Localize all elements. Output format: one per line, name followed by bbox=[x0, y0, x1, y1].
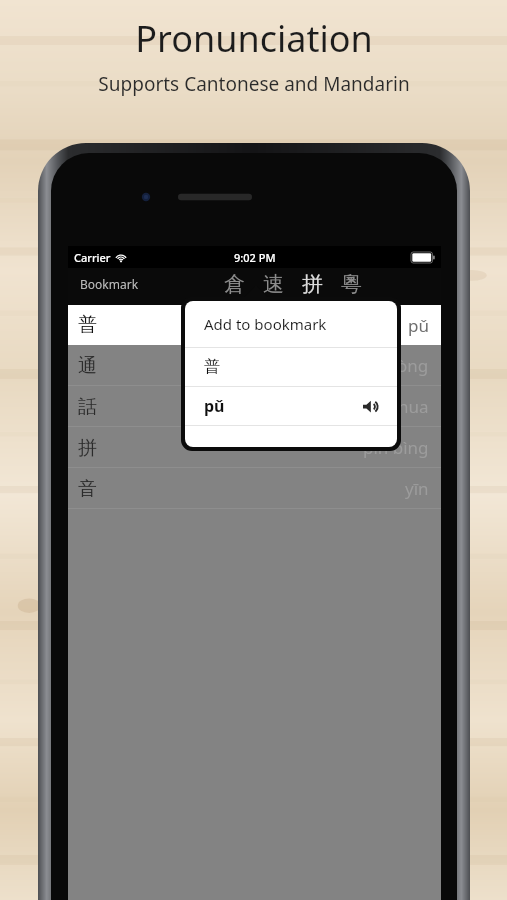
staticText: Add to bookmark bbox=[204, 314, 327, 334]
button[interactable]: 拼 bbox=[68, 427, 441, 468]
button[interactable]: 普 bbox=[68, 305, 441, 345]
staticText: pīn bìng bbox=[363, 436, 429, 459]
staticText: 話 bbox=[78, 395, 97, 419]
staticText: 普 bbox=[204, 357, 220, 377]
button[interactable]: 話 bbox=[68, 426, 441, 467]
staticText: Supports Cantonese and Mandarin bbox=[98, 71, 410, 97]
button[interactable]: Bookmark bbox=[76, 272, 143, 296]
button[interactable]: Clear search bbox=[412, 315, 427, 330]
staticText: 粵 bbox=[341, 271, 362, 297]
staticText: 拼 bbox=[302, 271, 323, 297]
button[interactable]: 話 bbox=[68, 386, 441, 427]
button[interactable]: 粵 bbox=[332, 269, 371, 299]
button[interactable]: 速 bbox=[254, 269, 293, 299]
button[interactable]: 普 bbox=[68, 345, 441, 385]
staticText: 倉 bbox=[224, 271, 245, 297]
staticText: 拼 bbox=[78, 436, 97, 460]
button[interactable]: 普 bbox=[185, 348, 397, 386]
button[interactable]: 普通話拼音 bbox=[75, 306, 434, 339]
staticText: Carrier bbox=[74, 250, 111, 265]
staticText: pǔ bbox=[408, 354, 429, 377]
staticText: 普 bbox=[78, 353, 97, 377]
button[interactable]: 拼 bbox=[293, 269, 332, 299]
staticText: 通 bbox=[78, 354, 97, 378]
staticText: huà hua bbox=[363, 435, 429, 458]
staticText: huà hua bbox=[363, 395, 429, 418]
staticText: pǔ bbox=[204, 395, 225, 417]
button[interactable]: 通 bbox=[68, 385, 441, 426]
staticText: 音 bbox=[78, 477, 97, 501]
staticText: 9:02 PM bbox=[234, 250, 276, 265]
button[interactable]: 通 bbox=[68, 345, 441, 386]
staticText: 話 bbox=[78, 435, 97, 459]
staticText: pīn bìng bbox=[363, 476, 429, 499]
staticText: tōng tòng bbox=[349, 354, 429, 377]
button[interactable]: 倉 bbox=[215, 269, 254, 299]
staticText: yīn bbox=[405, 477, 429, 500]
button[interactable]: 音 bbox=[68, 468, 441, 509]
button[interactable]: 拼 bbox=[68, 467, 441, 508]
button[interactable]: Play pronunciation bbox=[362, 398, 379, 415]
staticText: 普 bbox=[78, 313, 97, 337]
staticText: 通 bbox=[78, 394, 97, 418]
button[interactable]: Add to bookmark bbox=[185, 301, 397, 347]
staticText: pǔ bbox=[408, 314, 429, 337]
staticText: 速 bbox=[263, 271, 284, 297]
staticText: 拼 bbox=[78, 476, 97, 500]
staticText: Pronunciation bbox=[135, 14, 373, 63]
staticText: Bookmark bbox=[80, 276, 139, 292]
staticText: tōng tòng bbox=[349, 394, 429, 417]
button[interactable]: pǔ bbox=[185, 387, 397, 425]
